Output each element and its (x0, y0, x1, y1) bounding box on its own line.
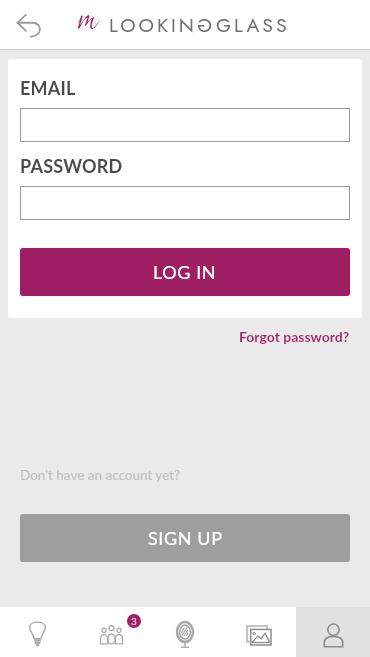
staticText: my (77, 0, 103, 44)
staticText: EMAIL (20, 77, 76, 99)
staticText: GLASS (216, 11, 290, 39)
staticText: LOG IN (153, 261, 217, 283)
button[interactable]: Friends (74, 607, 148, 657)
button[interactable]: Back (9, 5, 49, 45)
staticText: 3 (131, 615, 137, 627)
button[interactable]: LOG IN (20, 248, 350, 296)
button[interactable]: Profile (296, 607, 370, 657)
button[interactable]: Mirror (148, 607, 222, 657)
button[interactable] (20, 108, 350, 142)
button[interactable]: SIGN UP (20, 514, 350, 562)
button[interactable] (20, 186, 350, 220)
staticText: G (193, 11, 212, 39)
staticText: PASSWORD (20, 155, 123, 177)
button[interactable]: Ideas (0, 607, 74, 657)
button[interactable]: Photos (222, 607, 296, 657)
staticText: LOOKIN (109, 11, 197, 39)
staticText: SIGN UP (148, 527, 223, 549)
staticText: Forgot password? (239, 328, 350, 345)
staticText: Don't have an account yet? (20, 467, 181, 483)
button[interactable]: Forgot password? (229, 328, 370, 345)
